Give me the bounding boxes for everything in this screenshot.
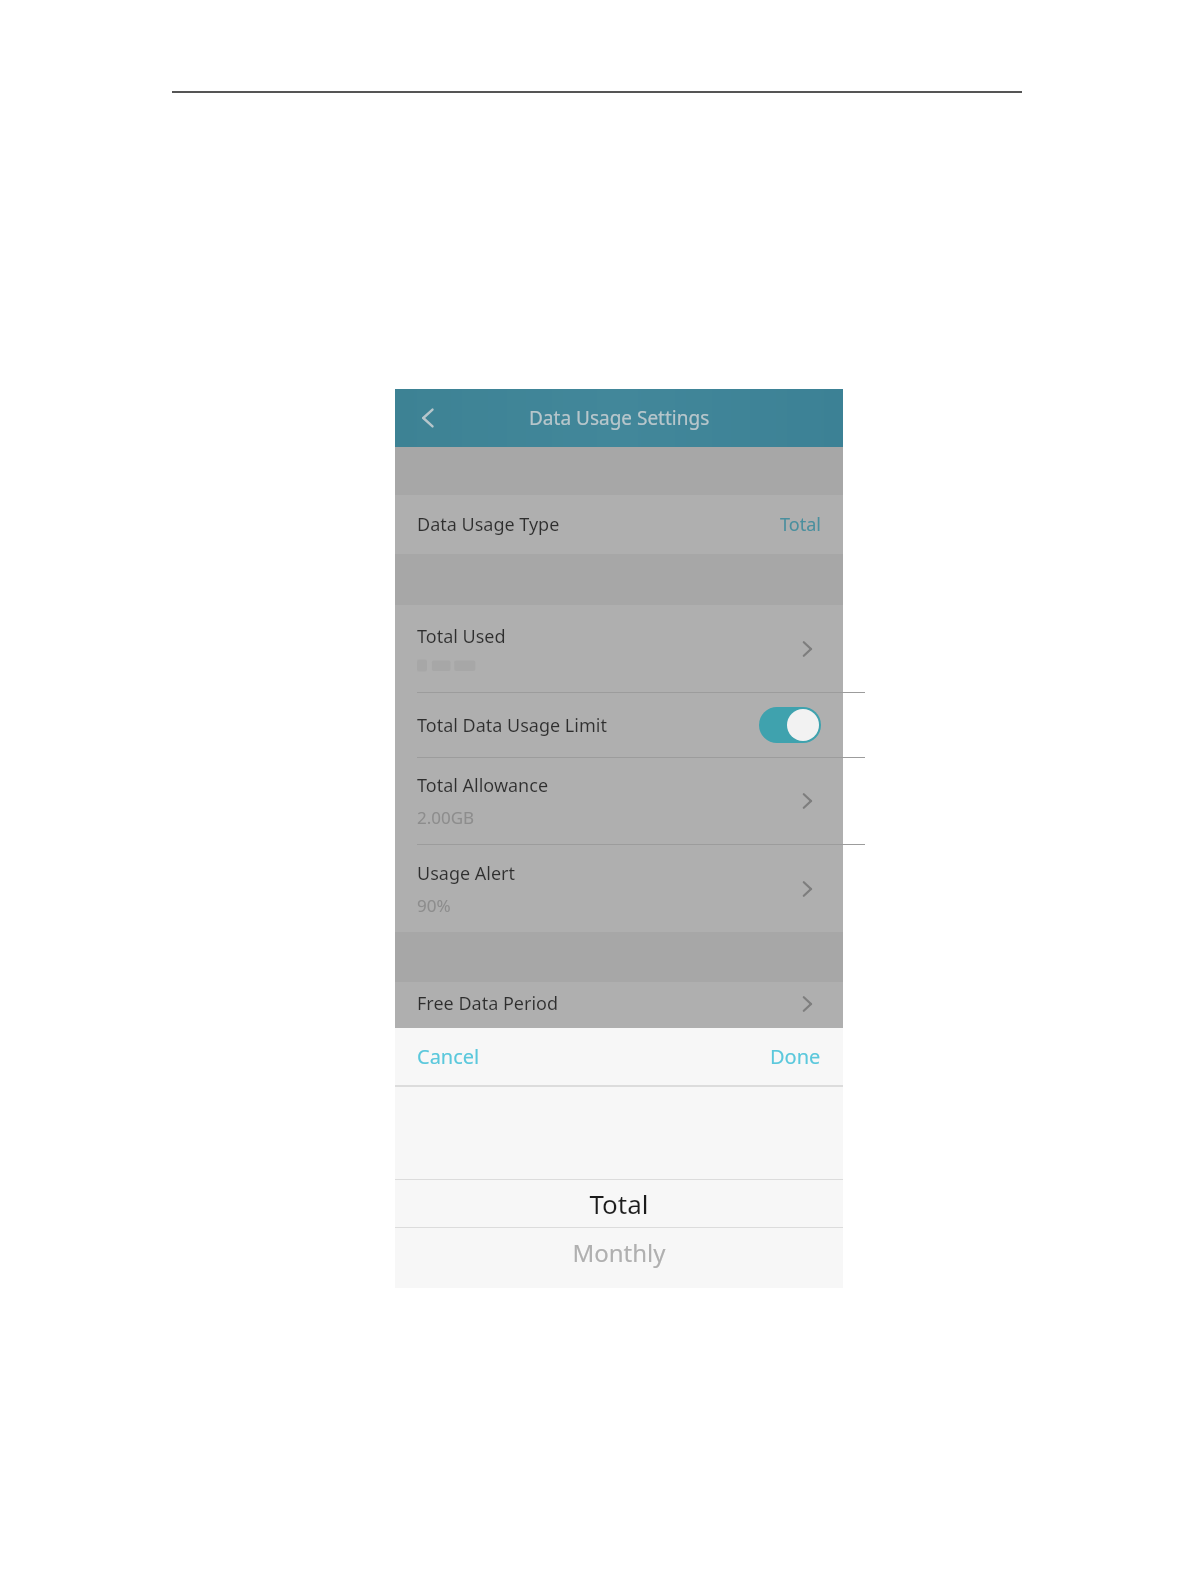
staticText: Cancel (417, 1043, 480, 1070)
staticText: Total (780, 512, 821, 537)
staticText: Done (770, 1043, 821, 1070)
button[interactable]: Back (405, 394, 453, 442)
staticText: Data Usage Settings (529, 405, 710, 431)
staticText: 90% (417, 894, 451, 917)
button[interactable]: Total Data Usage Limit toggle (759, 707, 821, 743)
button[interactable]: Done (756, 1035, 835, 1078)
button[interactable]: Total (395, 1180, 843, 1227)
button[interactable]: Total Data Usage Limit (395, 693, 843, 757)
button[interactable]: Cancel (403, 1035, 494, 1078)
staticText: Data Usage Type (417, 512, 560, 537)
staticText: 2.00GB (417, 806, 475, 829)
button[interactable]: Monthly (395, 1228, 843, 1276)
staticText: Total (589, 1186, 649, 1221)
button[interactable]: Free Data Period (395, 982, 843, 1028)
staticText: Total Used (417, 624, 506, 649)
button[interactable]: Total Used (395, 605, 843, 692)
staticText: Total Data Usage Limit (417, 713, 607, 738)
staticText: Total Allowance (417, 773, 549, 798)
button[interactable]: Usage Alert (395, 845, 843, 932)
staticText: Usage Alert (417, 861, 516, 886)
button[interactable]: Data Usage Type (395, 495, 843, 554)
button[interactable]: Total Allowance (395, 758, 843, 844)
staticText: Monthly (572, 1236, 666, 1269)
staticText: Free Data Period (417, 991, 558, 1016)
